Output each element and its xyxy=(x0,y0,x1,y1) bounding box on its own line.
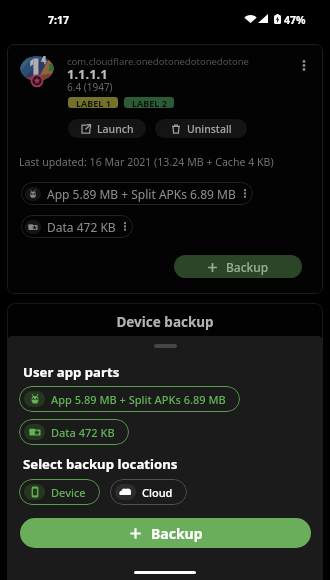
button[interactable]: More options xyxy=(293,54,315,76)
staticText: 7:17 xyxy=(48,13,69,27)
button[interactable]: Data 472 KB xyxy=(21,215,133,238)
staticText: Device backup xyxy=(0,313,330,331)
staticText: LABEL 2 xyxy=(132,97,167,108)
button[interactable]: Backup xyxy=(174,255,302,278)
button[interactable]: Data 472 KB xyxy=(19,419,129,445)
staticText: App 5.89 MB + Split APKs 6.89 MB xyxy=(47,186,236,202)
button[interactable]: App 5.89 MB + Split APKs 6.89 MB xyxy=(21,182,253,205)
staticText: 1.1.1.1 xyxy=(67,65,108,83)
button[interactable]: Device xyxy=(19,479,100,505)
staticText: Data 472 KB xyxy=(47,219,116,235)
button[interactable]: Cloud xyxy=(110,479,187,505)
staticText: Uninstall xyxy=(187,122,232,136)
staticText: 47% xyxy=(284,13,306,27)
staticText: App 5.89 MB + Split APKs 6.89 MB xyxy=(51,392,226,407)
staticText: Cloud xyxy=(142,485,173,500)
staticText: Backup xyxy=(226,259,269,275)
staticText: LABEL 1 xyxy=(76,97,111,108)
staticText: com.cloudflare.onedotonedotonedotone xyxy=(67,55,249,68)
button[interactable]: LABEL 1 xyxy=(68,97,118,108)
staticText: 6.4 (1947) xyxy=(67,80,113,94)
staticText: Last updated: 16 Mar 2021 (13.24 MB + Ca… xyxy=(19,155,274,169)
staticText: Device xyxy=(51,485,86,500)
button[interactable]: Uninstall xyxy=(155,119,247,138)
staticText: Launch xyxy=(97,122,134,136)
staticText: User app parts xyxy=(23,363,120,381)
button[interactable]: Launch xyxy=(68,119,146,138)
button[interactable]: App 5.89 MB + Split APKs 6.89 MB xyxy=(19,386,240,412)
button[interactable]: Backup xyxy=(20,518,311,548)
staticText: Select backup locations xyxy=(23,455,178,473)
staticText: Data 472 KB xyxy=(51,425,115,440)
button[interactable]: LABEL 2 xyxy=(124,97,174,108)
staticText: Backup xyxy=(151,524,203,543)
